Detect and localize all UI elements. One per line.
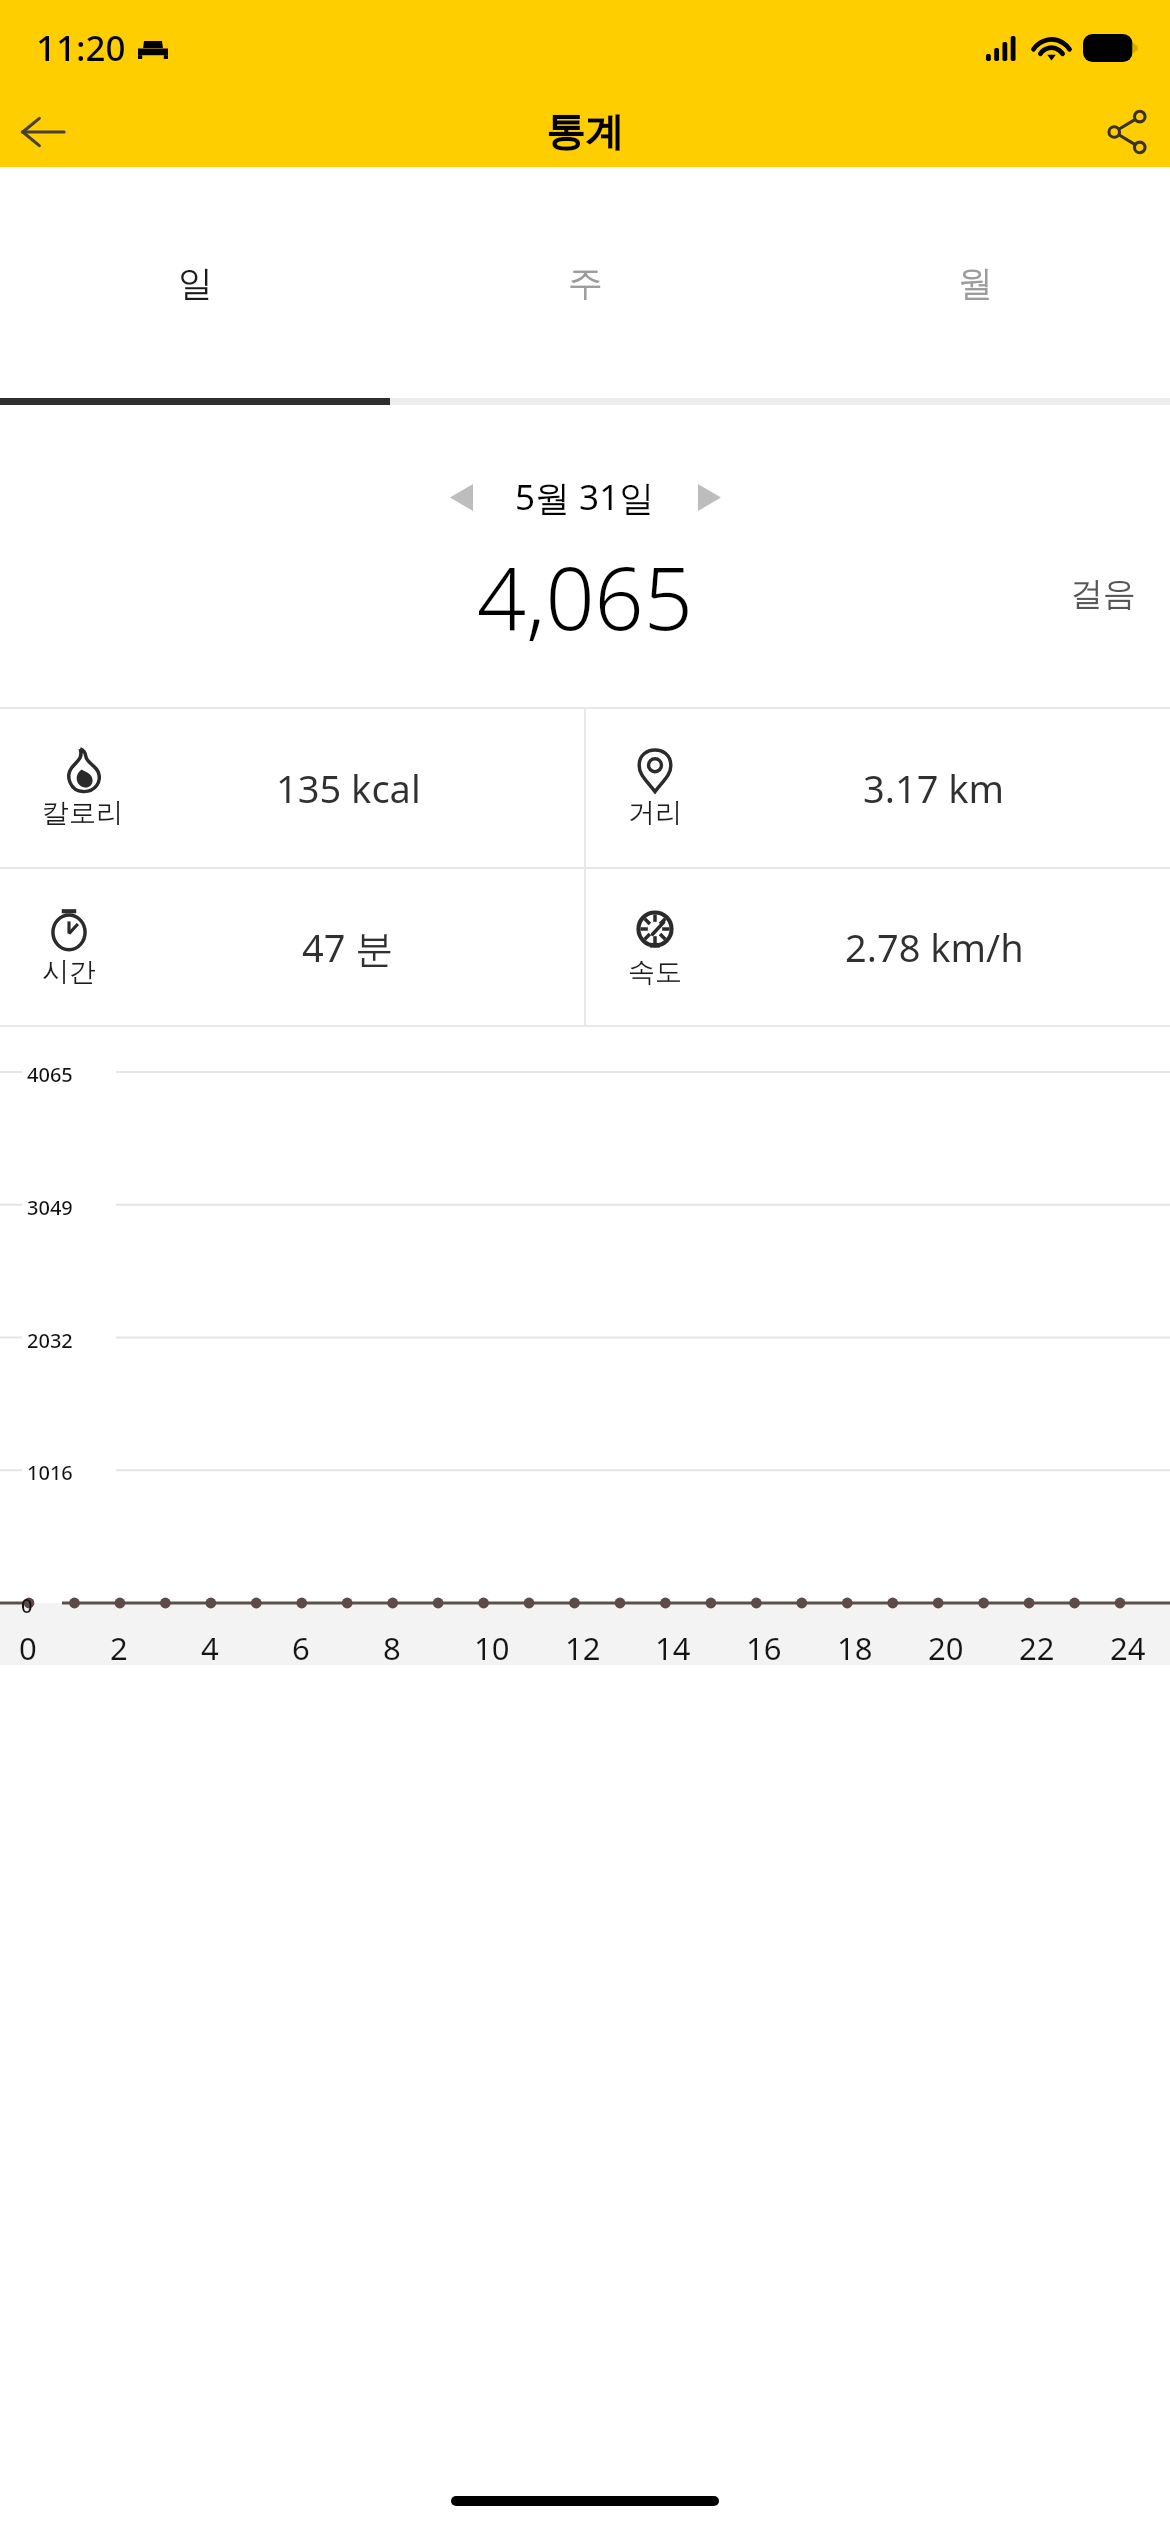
staticText: 4 xyxy=(201,1627,219,1669)
staticText: 2 xyxy=(110,1627,128,1669)
button[interactable]: Previous day xyxy=(431,467,491,527)
staticText: 칼로리 xyxy=(42,796,123,830)
staticText: 18 xyxy=(837,1627,873,1669)
staticText: 14 xyxy=(655,1627,691,1669)
staticText: 135 kcal xyxy=(276,762,421,814)
button[interactable]: 속도 xyxy=(586,869,1170,1025)
staticText: 4065 xyxy=(27,1061,73,1088)
staticText: 16 xyxy=(746,1627,782,1669)
staticText: 2.78 km/h xyxy=(845,921,1024,973)
staticText: 24 xyxy=(1110,1627,1146,1669)
staticText: 0 xyxy=(21,1592,33,1619)
staticText: 일 xyxy=(178,261,213,305)
staticText: 11:20 xyxy=(36,24,126,72)
staticText: 12 xyxy=(565,1627,601,1669)
button[interactable]: 칼로리 xyxy=(0,709,584,867)
staticText: 통계 xyxy=(546,107,624,156)
staticText: 4,065 xyxy=(477,538,693,650)
staticText: 속도 xyxy=(628,955,682,989)
staticText: 1016 xyxy=(27,1459,73,1486)
button[interactable]: 일 xyxy=(0,167,390,398)
staticText: 주 xyxy=(568,261,603,305)
staticText: 47 분 xyxy=(302,921,394,973)
staticText: 3.17 km xyxy=(863,762,1005,814)
button[interactable]: 주 xyxy=(390,167,780,398)
staticText: 시간 xyxy=(42,955,96,989)
button[interactable]: 시간 xyxy=(0,869,584,1025)
button[interactable]: 거리 xyxy=(586,709,1170,867)
button[interactable]: Share xyxy=(1084,96,1170,167)
staticText: 걸음 xyxy=(1070,573,1136,615)
staticText: 0 xyxy=(19,1627,37,1669)
staticText: 10 xyxy=(474,1627,510,1669)
staticText: 2032 xyxy=(27,1327,73,1354)
staticText: 8 xyxy=(383,1627,401,1669)
staticText: 3049 xyxy=(27,1194,73,1221)
staticText: 5월 31일 xyxy=(515,473,655,521)
staticText: 22 xyxy=(1019,1627,1055,1669)
button[interactable]: Next day xyxy=(679,467,739,527)
staticText: 20 xyxy=(928,1627,964,1669)
staticText: 월 xyxy=(958,261,993,305)
button[interactable]: 월 xyxy=(780,167,1170,398)
staticText: 거리 xyxy=(628,796,682,830)
button[interactable]: Back xyxy=(0,96,86,167)
staticText: 6 xyxy=(292,1627,310,1669)
